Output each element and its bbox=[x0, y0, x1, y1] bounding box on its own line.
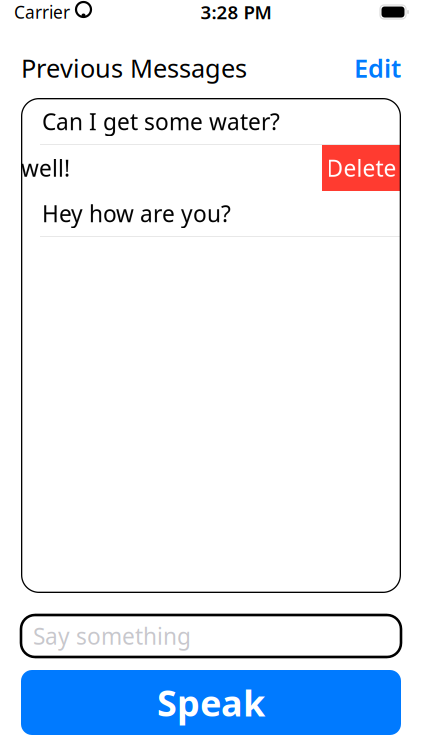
staticText: 3:28 PM bbox=[200, 0, 271, 24]
button[interactable]: Delete bbox=[322, 145, 401, 191]
button[interactable]: Say something bbox=[21, 615, 401, 657]
staticText: Speak bbox=[157, 679, 265, 726]
staticText: Carrier bbox=[14, 0, 70, 23]
button[interactable]: Hey how are you? bbox=[21, 191, 401, 237]
staticText: well! bbox=[21, 153, 70, 183]
button[interactable]: Speak bbox=[21, 670, 401, 735]
staticText: Previous Messages bbox=[21, 51, 247, 85]
button[interactable]: well! bbox=[21, 145, 322, 191]
button[interactable]: Can I get some water? bbox=[21, 99, 401, 145]
staticText: Say something bbox=[33, 621, 191, 651]
staticText: Can I get some water? bbox=[42, 106, 280, 136]
staticText: Delete bbox=[326, 153, 396, 183]
staticText: Hey how are you? bbox=[42, 198, 231, 228]
button[interactable]: Edit bbox=[354, 51, 401, 85]
staticText: Edit bbox=[354, 51, 401, 85]
